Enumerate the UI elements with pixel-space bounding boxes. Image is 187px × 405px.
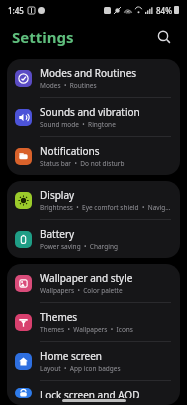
staticText: Sound mode • Ringtone [40,120,116,129]
button[interactable]: Search [151,24,177,50]
button[interactable]: Wallpaper and style [7,264,180,302]
button[interactable]: Display [7,181,180,219]
button[interactable]: Modes and Routines [7,59,180,97]
button[interactable]: Lock screen and AOD [7,381,180,405]
staticText: 1:45 [8,5,24,16]
staticText: Themes [40,310,78,324]
staticText: Brightness • Eye comfort shield • Naviga… [40,203,172,212]
staticText: Notifications [40,144,100,158]
staticText: Lock screen and AOD [40,388,140,398]
button[interactable]: Sounds and vibration [7,98,180,136]
staticText: Wallpapers • Color palette [40,286,123,295]
staticText: 84% [156,5,172,16]
staticText: Modes and Routines [40,66,137,80]
staticText: Modes • Routines [40,81,97,90]
staticText: Home screen [40,349,103,363]
staticText: Themes • Wallpapers • Icons [40,325,133,334]
staticText: Battery [40,227,75,241]
button[interactable]: Battery [7,220,180,258]
staticText: Wallpaper and style [40,271,133,285]
staticText: Status bar • Do not disturb [40,159,125,168]
button[interactable]: Home screen [7,342,180,380]
button[interactable]: Themes [7,303,180,341]
staticText: Settings [12,27,74,47]
staticText: Layout • App icon badges [40,364,121,373]
staticText: Sounds and vibration [40,105,140,119]
staticText: Display [40,188,75,202]
button[interactable]: Notifications [7,137,180,175]
staticText: Power saving • Charging [40,242,118,251]
